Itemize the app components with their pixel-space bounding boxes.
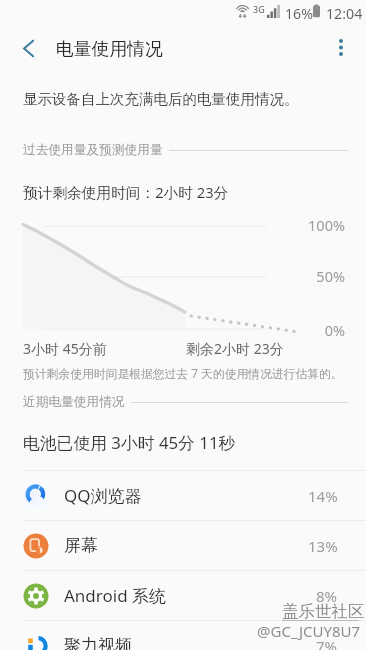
staticText: 近期电量使用情况: [23, 394, 125, 410]
staticText: Android 系统: [64, 584, 167, 607]
staticText: 预计剩余使用时间：2小时 23分: [23, 182, 229, 202]
staticText: 3小时 45分前: [23, 339, 107, 358]
button[interactable]: 屏幕: [0, 520, 366, 570]
staticText: @GC_JCUY8U7: [257, 621, 361, 641]
staticText: 100%: [245, 215, 345, 235]
staticText: 聚力视频: [64, 635, 132, 650]
button[interactable]: 聚力视频: [0, 620, 366, 650]
staticText: 13%: [308, 536, 338, 556]
button[interactable]: More options: [322, 28, 360, 66]
staticText: 3G: [253, 3, 265, 15]
staticText: 电量使用情况: [56, 38, 163, 60]
staticText: 电池已使用 3小时 45分 11秒: [23, 431, 236, 454]
staticText: 显示设备自上次充满电后的电量使用情况。: [23, 90, 299, 108]
staticText: 14%: [308, 486, 338, 506]
staticText: 屏幕: [64, 535, 98, 556]
button[interactable]: QQ浏览器: [0, 470, 366, 520]
staticText: 盖乐世社区: [282, 601, 365, 622]
staticText: 50%: [245, 266, 345, 286]
staticText: 0%: [245, 320, 345, 340]
button[interactable]: Android 系统: [0, 570, 366, 620]
staticText: 16%: [285, 4, 314, 23]
staticText: 12:04: [326, 4, 363, 23]
staticText: 8%: [316, 586, 338, 606]
button[interactable]: Back: [9, 29, 47, 67]
staticText: QQ浏览器: [64, 484, 142, 507]
staticText: 预计剩余使用时间是根据您过去 7 天的使用情况进行估算的。: [23, 365, 343, 381]
staticText: 剩余2小时 23分: [186, 339, 284, 358]
staticText: 过去使用量及预测使用量: [23, 142, 163, 158]
staticText: 7%: [316, 636, 338, 650]
